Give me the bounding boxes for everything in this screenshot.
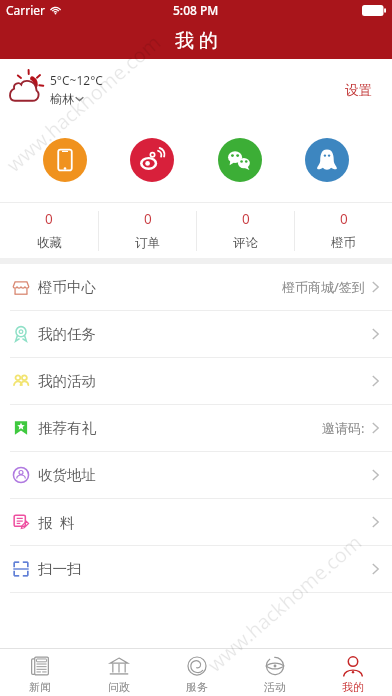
button[interactable]: Mobile (43, 138, 87, 182)
button[interactable]: 我的任务 (0, 311, 392, 357)
button[interactable]: 0 (0, 203, 98, 258)
staticText: 我 的 (175, 27, 218, 53)
staticText: 服务 (186, 680, 208, 694)
button[interactable]: 设置 (329, 74, 392, 107)
staticText: 5:08 PM (173, 2, 219, 18)
staticText: 报 料 (38, 512, 75, 532)
button[interactable]: 0 (295, 203, 392, 258)
button[interactable]: 报 料 (0, 499, 392, 545)
staticText: 问政 (108, 680, 130, 694)
staticText: 0 (45, 210, 53, 228)
staticText: 设置 (345, 82, 372, 99)
staticText: 评论 (233, 235, 258, 251)
staticText: 收货地址 (38, 466, 96, 484)
staticText: 0 (242, 210, 250, 228)
button[interactable]: Weibo (130, 138, 174, 182)
staticText: 0 (340, 210, 348, 228)
staticText: 扫一扫 (38, 560, 82, 578)
button[interactable]: 0 (197, 203, 294, 258)
staticText: 订单 (135, 235, 160, 251)
button[interactable]: 推荐有礼 (0, 405, 392, 451)
button[interactable]: 收货地址 (0, 452, 392, 498)
button[interactable]: 橙币中心 (0, 264, 392, 310)
staticText: 橙币商城/签到 (282, 278, 365, 296)
staticText: 邀请码: (322, 419, 365, 437)
staticText: 活动 (264, 680, 286, 694)
staticText: 我的活动 (38, 372, 96, 390)
button[interactable]: QQ (305, 138, 349, 182)
button[interactable]: 5°C~12°C (8, 72, 103, 106)
button[interactable]: 我的活动 (0, 358, 392, 404)
button[interactable]: WeChat (218, 138, 262, 182)
staticText: 橙币中心 (38, 278, 96, 296)
staticText: 收藏 (37, 235, 62, 251)
staticText: 橙币 (331, 235, 356, 251)
staticText: 推荐有礼 (38, 419, 96, 437)
button[interactable]: 0 (99, 203, 196, 258)
button[interactable]: 扫一扫 (0, 546, 392, 592)
staticText: 5°C~12°C (50, 72, 103, 88)
staticText: 新闻 (29, 680, 51, 694)
button[interactable]: 新闻 (0, 651, 79, 696)
staticText: 我的 (342, 680, 364, 694)
staticText: 榆林 (50, 91, 74, 106)
button[interactable]: 服务 (158, 651, 236, 696)
staticText: Carrier (6, 2, 46, 18)
button[interactable]: 活动 (236, 651, 314, 696)
button[interactable]: 问政 (79, 651, 158, 696)
staticText: 0 (144, 210, 152, 228)
button[interactable]: 我的 (314, 651, 392, 696)
staticText: 我的任务 (38, 325, 96, 343)
